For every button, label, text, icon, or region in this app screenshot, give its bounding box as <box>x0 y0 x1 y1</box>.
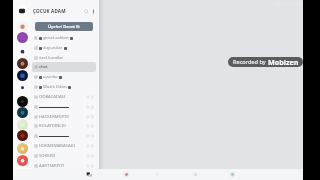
staticText: SOKKKII <box>39 153 56 159</box>
staticText: HACKERMOYTR <box>39 114 69 120</box>
staticText: Üyeleri Davet Et <box>48 24 80 30</box>
button[interactable]: Server <box>17 46 28 57</box>
button[interactable]: SOKKKII <box>32 151 96 161</box>
button[interactable]: Server <box>17 82 28 93</box>
button[interactable]: Home <box>188 169 202 180</box>
button[interactable]: chat <box>32 62 96 72</box>
staticText: KOLAYDINLIG <box>39 123 66 129</box>
button[interactable]: Server <box>17 21 28 32</box>
button[interactable]: Server <box>17 155 28 166</box>
button[interactable]: duyurular <box>32 43 96 53</box>
staticText: Mobizen <box>268 57 299 67</box>
staticText: AARTTARIYIT <box>39 163 65 169</box>
button[interactable]: Server <box>17 143 28 154</box>
button[interactable]: KOLAYDINLIG <box>32 121 96 131</box>
staticText: duyurular <box>43 45 63 51</box>
button[interactable]: genel-sohbet <box>32 33 96 43</box>
button[interactable]: Home <box>16 5 28 17</box>
button[interactable]: More options <box>87 5 99 17</box>
button[interactable]: HACKERMOYTR <box>32 112 96 122</box>
staticText: oyunlar <box>43 74 58 80</box>
button[interactable]: Server <box>17 119 28 130</box>
button[interactable]: ÇOCUK ADAM <box>33 5 81 17</box>
button[interactable]: özel-kurallar <box>32 53 96 63</box>
button[interactable]: Server <box>17 70 28 81</box>
button[interactable]: Müzik Odası <box>32 82 96 92</box>
staticText: Recorded by <box>233 58 268 66</box>
button[interactable] <box>32 102 96 112</box>
staticText: chat <box>39 64 48 70</box>
staticText: Müzik Odası <box>43 84 67 90</box>
button[interactable]: Server <box>17 130 28 141</box>
button[interactable] <box>32 131 96 141</box>
button[interactable]: AARTTARIYIT <box>32 161 96 171</box>
button[interactable]: Recent apps <box>225 169 239 180</box>
button[interactable]: Server <box>17 32 28 43</box>
staticText: HOKMEMARACAKI <box>39 143 75 149</box>
button[interactable]: Üyeleri Davet Et <box>35 22 93 31</box>
button[interactable]: Server <box>17 107 28 118</box>
button[interactable]: Server <box>17 96 28 107</box>
button[interactable]: oyunlar <box>32 72 96 82</box>
staticText: ÇOCUK ADAM <box>33 8 66 14</box>
button[interactable]: HOKMEMARACAKI <box>32 141 96 151</box>
button[interactable]: Server <box>17 58 28 69</box>
staticText: genel-sohbet <box>43 35 69 41</box>
staticText: özel-kurallar <box>39 55 64 61</box>
button[interactable]: Search <box>80 5 92 17</box>
button[interactable]: Screenshot <box>82 169 96 180</box>
staticText: OOBACADASI <box>39 94 66 100</box>
button[interactable]: OOBACADASI <box>32 92 96 102</box>
button[interactable]: Record <box>119 169 133 180</box>
